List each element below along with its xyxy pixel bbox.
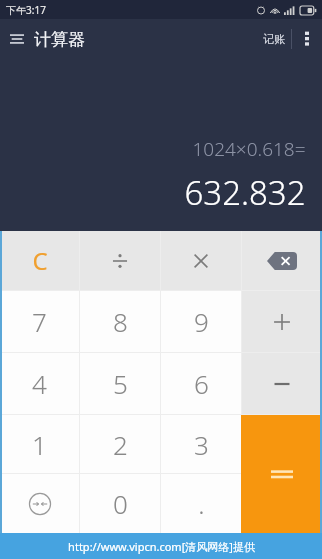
button[interactable]: . [161, 474, 241, 533]
staticText: 7 [32, 304, 47, 339]
button[interactable]: 9 [161, 291, 241, 352]
staticText: 计算器 [34, 29, 85, 50]
staticText: 1 [32, 427, 47, 462]
button[interactable]: Equals [241, 415, 322, 533]
staticText: 0 [113, 486, 128, 521]
button[interactable]: Plus [242, 291, 322, 352]
staticText: 8 [113, 304, 128, 339]
staticText: 3 [194, 427, 209, 462]
button[interactable]: 2 [80, 415, 160, 473]
button[interactable]: 记账 [263, 32, 285, 46]
button[interactable]: 1 [0, 415, 79, 473]
staticText: 4 [32, 366, 47, 401]
staticText: 9 [194, 304, 209, 339]
staticText: 6 [194, 366, 209, 401]
button[interactable]: More options [292, 19, 322, 59]
staticText: 2 [113, 427, 128, 462]
staticText: http://www.vipcn.com[清风网络]提供 [68, 539, 255, 554]
staticText: 632.832 [184, 170, 306, 215]
button[interactable]: Divide [80, 231, 160, 290]
staticText: 1024×0.618= [192, 136, 306, 162]
button[interactable]: Minus [242, 353, 322, 414]
button[interactable]: 7 [0, 291, 79, 352]
staticText: . [198, 486, 205, 521]
staticText: 下午3:17 [6, 3, 46, 17]
button[interactable]: 4 [0, 353, 79, 414]
button[interactable]: 6 [161, 353, 241, 414]
button[interactable]: Multiply [161, 231, 241, 290]
staticText: C [32, 244, 48, 277]
button[interactable]: 3 [161, 415, 241, 473]
staticText: 记账 [263, 32, 285, 46]
button[interactable]: Menu [4, 26, 30, 52]
button[interactable]: Collapse [0, 474, 79, 533]
button[interactable]: 5 [80, 353, 160, 414]
staticText: 5 [113, 366, 128, 401]
button[interactable]: 0 [80, 474, 160, 533]
button[interactable]: C [0, 231, 79, 290]
button[interactable]: 8 [80, 291, 160, 352]
button[interactable]: Backspace [242, 231, 322, 290]
